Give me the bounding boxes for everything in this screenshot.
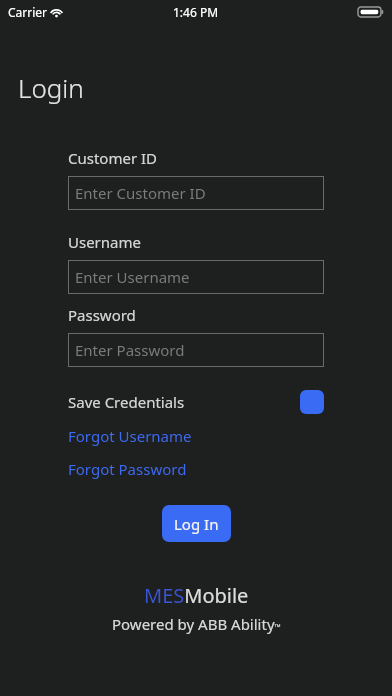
other: Wi-Fi bbox=[49, 6, 64, 18]
staticText: Carrier bbox=[8, 4, 48, 20]
button[interactable]: Log In bbox=[162, 505, 231, 542]
staticText: Username bbox=[68, 232, 141, 252]
button[interactable]: Enter Customer ID bbox=[68, 176, 324, 210]
staticText: MESMobile bbox=[144, 582, 249, 609]
staticText: Enter Customer ID bbox=[75, 183, 206, 203]
staticText: Enter Username bbox=[75, 267, 190, 287]
staticText: Powered by ABB Ability™ bbox=[112, 614, 281, 634]
staticText: Forgot Password bbox=[68, 459, 187, 479]
staticText: Log In bbox=[174, 514, 219, 534]
button[interactable]: Forgot Password bbox=[68, 459, 187, 479]
staticText: 1:46 PM bbox=[173, 4, 219, 20]
staticText: Customer ID bbox=[68, 148, 158, 168]
other: Battery bbox=[358, 6, 384, 18]
staticText: Login bbox=[18, 70, 84, 105]
other: Save credentials toggle bbox=[300, 390, 324, 414]
button[interactable]: Enter Username bbox=[68, 260, 324, 294]
staticText: Forgot Username bbox=[68, 426, 192, 446]
button[interactable]: Enter Password bbox=[68, 333, 324, 367]
button[interactable]: Save Credentials bbox=[68, 390, 324, 414]
staticText: Password bbox=[68, 305, 136, 325]
staticText: Save Credentials bbox=[68, 392, 185, 412]
staticText: Enter Password bbox=[75, 340, 185, 360]
button[interactable]: Forgot Username bbox=[68, 426, 192, 446]
